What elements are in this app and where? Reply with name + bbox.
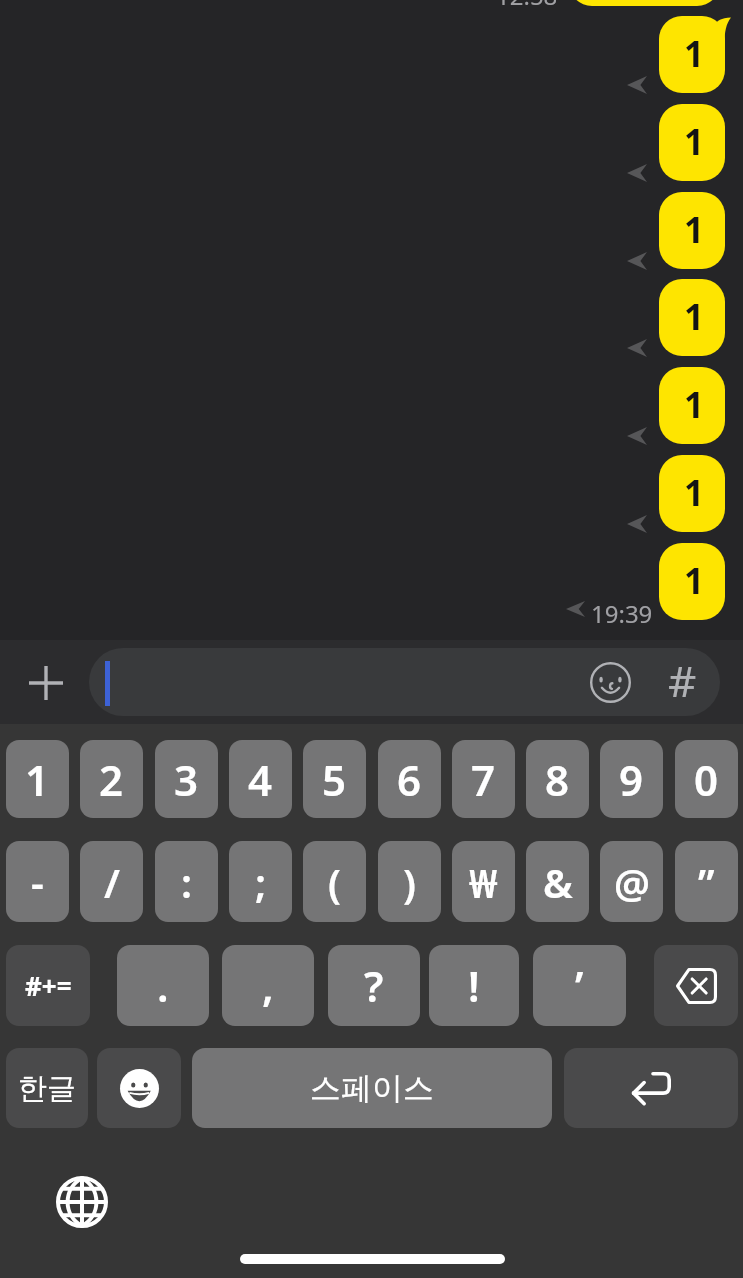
button[interactable]: 1 (659, 455, 725, 532)
staticText: & (543, 855, 573, 909)
button[interactable] (569, 0, 720, 6)
button[interactable]: ’ (533, 945, 626, 1026)
button[interactable]: ₩ (452, 841, 515, 922)
button[interactable]: 1 (659, 192, 725, 269)
staticText: 1 (684, 30, 705, 78)
button[interactable]: 1 (659, 367, 725, 444)
button[interactable]: 스페이스 (192, 1048, 552, 1128)
button[interactable]: ; (229, 841, 292, 922)
button[interactable]: emoji (97, 1048, 181, 1128)
staticText: # (668, 651, 697, 697)
button[interactable]: Emoticons (587, 659, 633, 705)
button[interactable]: 8 (526, 740, 589, 818)
button[interactable]: ? (328, 945, 420, 1026)
button[interactable]: 6 (378, 740, 441, 818)
staticText: 5 (322, 751, 347, 808)
button[interactable]: 한글 (6, 1048, 88, 1128)
staticText: ( (328, 855, 341, 909)
button[interactable]: bksp (654, 945, 738, 1026)
button[interactable]: , (222, 945, 314, 1026)
staticText: ; (255, 855, 267, 909)
staticText: ” (698, 855, 715, 909)
staticText: 1 (684, 206, 705, 254)
button[interactable]: 0 (675, 740, 738, 818)
staticText: , (262, 957, 274, 1014)
button[interactable]: 3 (155, 740, 218, 818)
staticText: 0 (694, 751, 719, 808)
staticText: / (104, 855, 120, 909)
button[interactable]: ” (675, 841, 738, 922)
staticText: 7 (471, 751, 496, 808)
staticText: : (181, 855, 193, 909)
button[interactable]: - (6, 841, 69, 922)
button[interactable]: Change keyboard language (54, 1174, 110, 1230)
staticText: 6 (397, 751, 422, 808)
staticText: 19:39 (591, 597, 653, 630)
button[interactable]: 1 (659, 543, 725, 620)
button[interactable]: . (117, 945, 209, 1026)
button[interactable]: ! (429, 945, 519, 1026)
button[interactable]: 5 (303, 740, 366, 818)
button[interactable]: ) (378, 841, 441, 922)
staticText: ! (468, 957, 480, 1014)
button[interactable]: 4 (229, 740, 292, 818)
staticText: 9 (619, 751, 644, 808)
staticText: 12:58 (496, 0, 558, 12)
button[interactable]: Add attachment (19, 656, 73, 710)
button[interactable]: & (526, 841, 589, 922)
staticText: ) (403, 855, 416, 909)
button[interactable]: 2 (80, 740, 143, 818)
button[interactable]: 9 (600, 740, 663, 818)
button[interactable]: @ (600, 841, 663, 922)
staticText: ? (364, 957, 384, 1014)
staticText: 1 (25, 751, 50, 808)
button[interactable]: : (155, 841, 218, 922)
staticText: ’ (575, 957, 584, 1014)
staticText: 4 (248, 751, 273, 808)
staticText: 1 (684, 293, 705, 341)
staticText: 2 (99, 751, 124, 808)
button[interactable]: 1 (659, 279, 725, 356)
staticText: @ (614, 855, 650, 909)
staticText: 3 (174, 751, 199, 808)
staticText: 1 (684, 381, 705, 429)
staticText: 스페이스 (310, 1069, 434, 1108)
button[interactable]: Emoticons (89, 648, 720, 716)
button[interactable]: enter (564, 1048, 738, 1128)
staticText: . (157, 957, 169, 1014)
button[interactable]: 1 (659, 16, 725, 93)
staticText: 한글 (18, 1070, 76, 1107)
button[interactable]: ( (303, 841, 366, 922)
staticText: ₩ (469, 855, 498, 909)
staticText: 8 (545, 751, 570, 808)
button[interactable]: #+= (6, 945, 90, 1026)
button[interactable]: / (80, 841, 143, 922)
staticText: 1 (684, 557, 705, 605)
button[interactable]: 7 (452, 740, 515, 818)
button[interactable]: 1 (659, 104, 725, 181)
staticText: 1 (684, 469, 705, 517)
staticText: - (31, 855, 44, 909)
staticText: 1 (684, 118, 705, 166)
button[interactable]: 1 (6, 740, 69, 818)
button[interactable]: Hashtag shortcut (659, 651, 705, 697)
staticText: #+= (25, 968, 72, 1003)
